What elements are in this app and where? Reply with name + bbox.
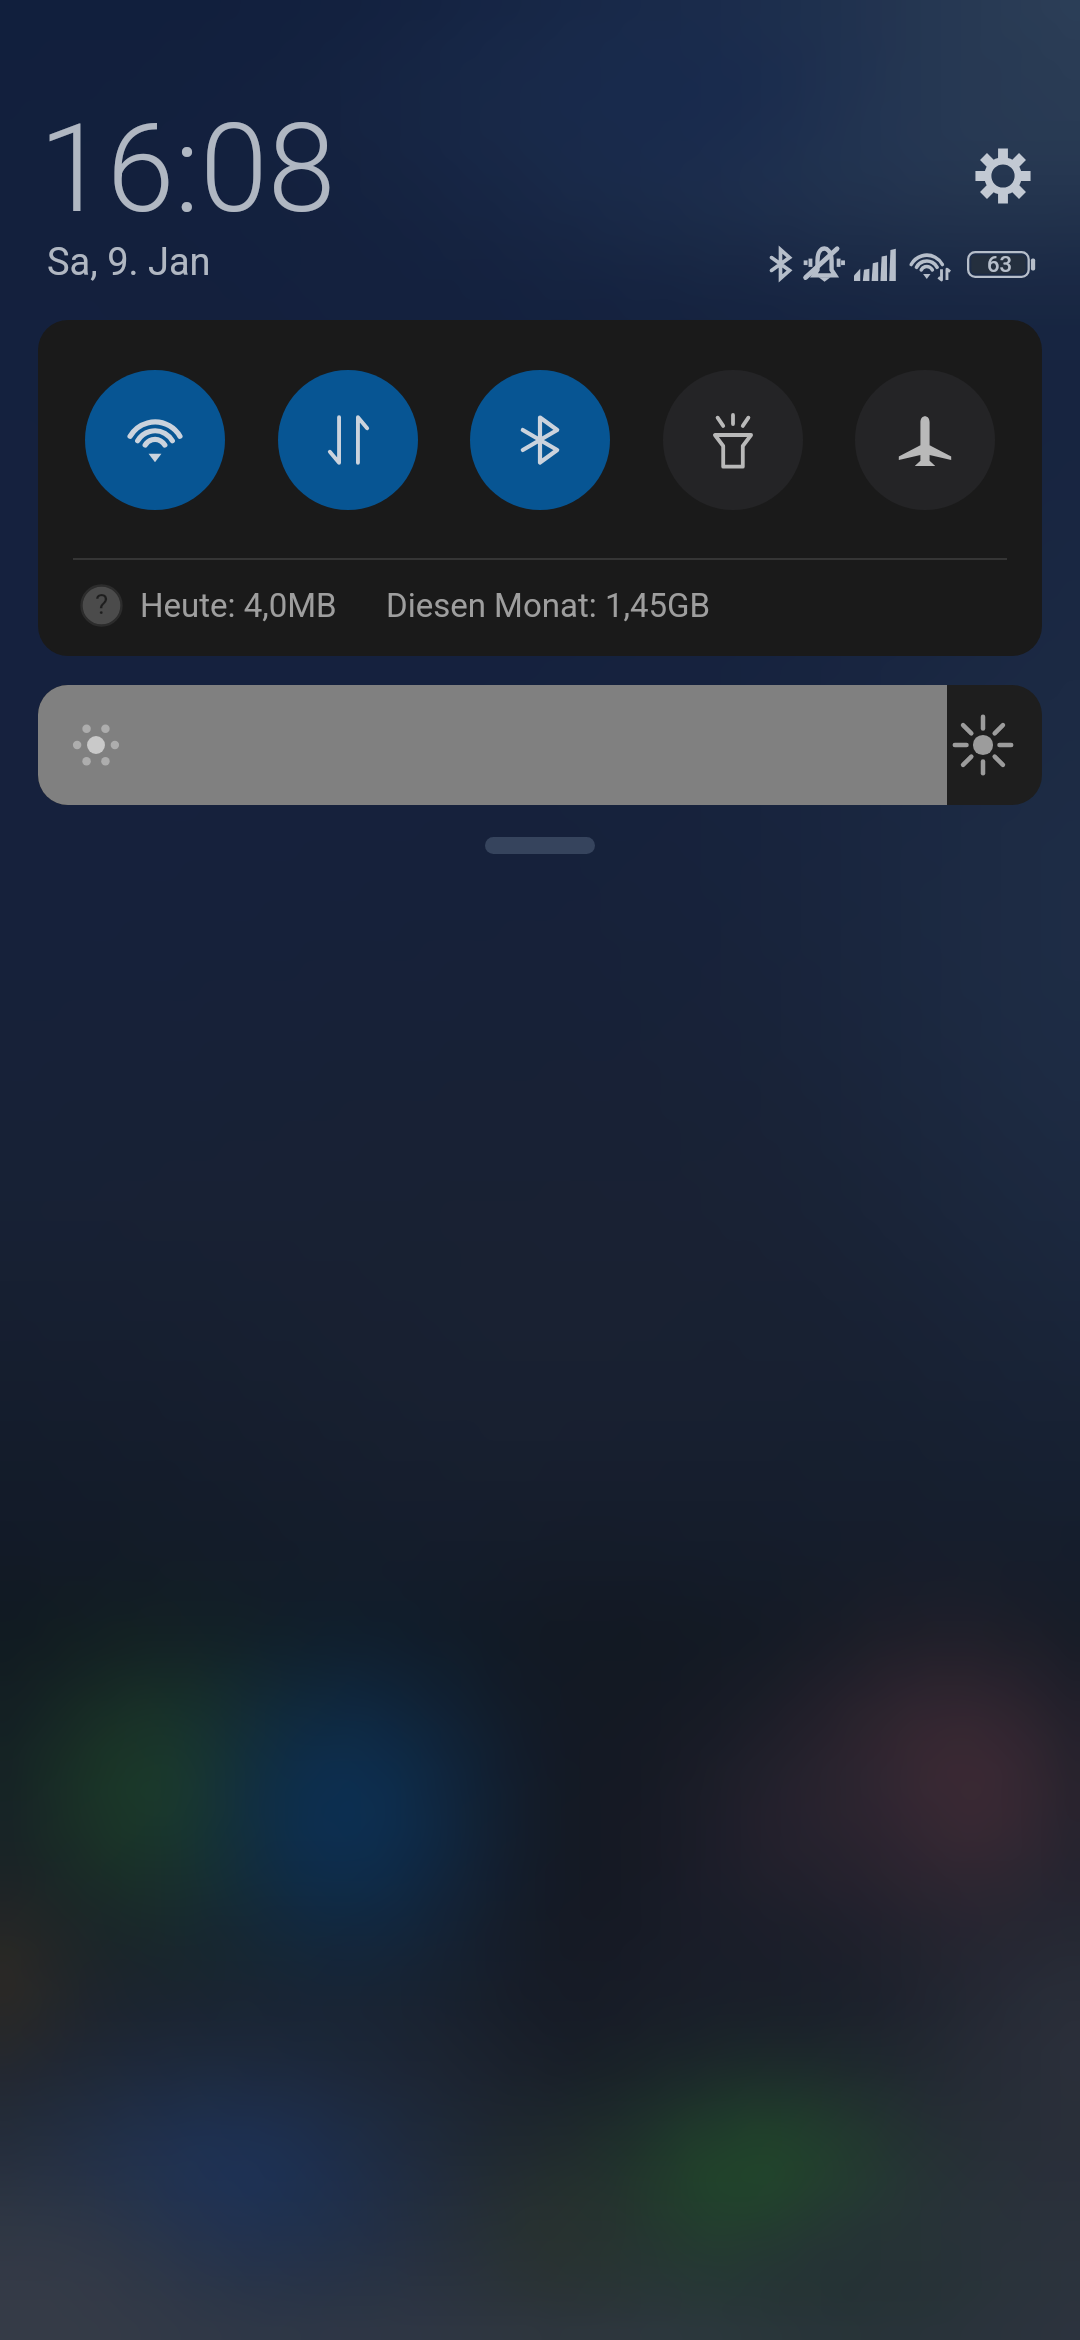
button[interactable]: Airplane mode — [855, 370, 995, 510]
staticText: 16:08 — [39, 98, 336, 241]
staticText: Heute: 4,0MB — [140, 586, 337, 625]
staticText: Sa, 9. Jan — [47, 240, 211, 285]
button[interactable]: Settings — [958, 131, 1048, 221]
button[interactable]: Wi-Fi — [85, 370, 225, 510]
staticText: ? — [95, 588, 109, 621]
button[interactable]: Mobile data — [278, 370, 418, 510]
button[interactable]: Expand — [485, 837, 595, 854]
button[interactable]: Brightness — [38, 685, 1042, 805]
staticText: Diesen Monat: 1,45GB — [386, 586, 711, 625]
button[interactable]: Bluetooth — [470, 370, 610, 510]
button[interactable]: Flashlight — [663, 370, 803, 510]
staticText: 63 — [987, 252, 1013, 278]
